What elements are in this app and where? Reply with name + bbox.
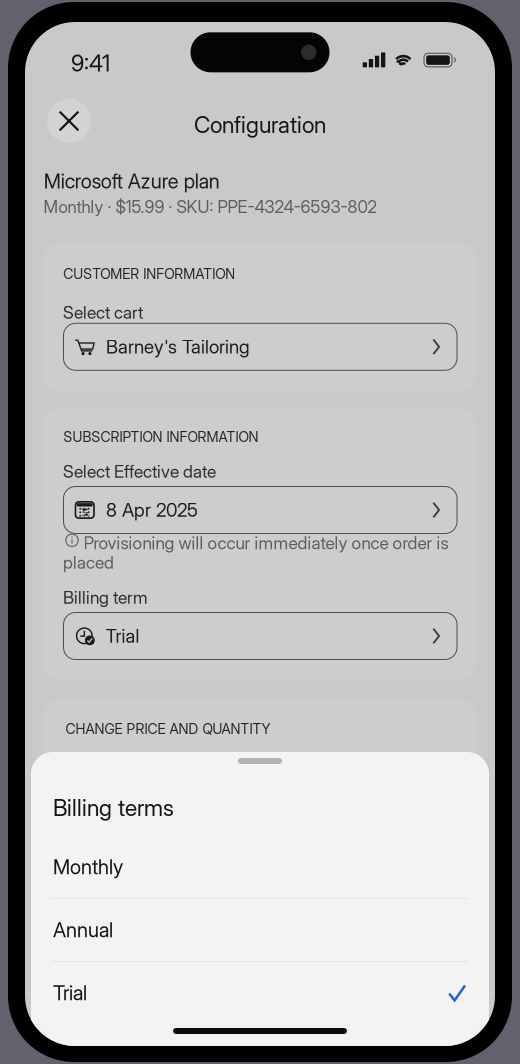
staticText: placed (63, 552, 114, 573)
staticText: Annual (53, 918, 113, 942)
staticText: Provisioning will occur immediately once… (84, 532, 449, 553)
staticText: Microsoft Azure plan (44, 169, 220, 193)
staticText: Trial (105, 625, 139, 647)
staticText: 8 Apr 2025 (106, 499, 198, 521)
staticText: Trial (53, 981, 87, 1005)
staticText: Select Effective date (63, 461, 216, 482)
staticText: SUBSCRIPTION INFORMATION (64, 428, 259, 445)
button[interactable]: Monthly (31, 836, 489, 898)
staticText: 9:41 (71, 49, 110, 77)
button[interactable]: Close (44, 96, 94, 146)
staticText: Billing term (63, 587, 148, 608)
button[interactable]: Trial (31, 962, 489, 1024)
button[interactable]: Barney's Tailoring (63, 323, 457, 370)
button[interactable]: Annual (31, 899, 489, 961)
button[interactable]: 8 Apr 2025 (63, 486, 457, 533)
staticText: Monthly · $15.99 · SKU: PPE-4324-6593-80… (43, 196, 377, 217)
staticText: Select cart (63, 302, 143, 323)
staticText: CUSTOMER INFORMATION (63, 265, 235, 282)
button[interactable]: Trial (63, 612, 457, 659)
staticText: CHANGE PRICE AND QUANTITY (65, 720, 270, 737)
staticText: Monthly (53, 855, 123, 879)
staticText: Billing terms (53, 794, 174, 821)
staticText: Configuration (194, 111, 326, 138)
staticText: Barney's Tailoring (106, 335, 250, 358)
